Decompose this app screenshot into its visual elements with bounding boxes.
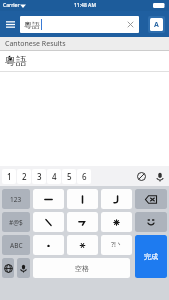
button[interactable]: 1 (2, 169, 16, 184)
button[interactable] (33, 235, 64, 255)
staticText: 完成 (144, 252, 158, 261)
button[interactable]: Menu (0, 14, 20, 34)
staticText: ABC (10, 241, 23, 250)
button[interactable] (67, 212, 98, 232)
staticText: 123 (10, 195, 22, 204)
button[interactable]: 粵語 (0, 51, 169, 71)
staticText: 4 (52, 171, 57, 182)
staticText: 空格 (75, 264, 89, 273)
button[interactable]: Change keyboard language (2, 258, 14, 278)
button[interactable]: 4 (47, 169, 61, 184)
button[interactable]: 2 (17, 169, 31, 184)
button[interactable] (101, 189, 132, 209)
button[interactable]: 完成 (135, 235, 167, 278)
button[interactable] (67, 189, 98, 209)
button[interactable]: 123 (2, 189, 30, 209)
staticText: 11:48 AM (74, 2, 96, 9)
button[interactable]: Backspace (135, 189, 167, 209)
button[interactable]: 粵語 (20, 16, 139, 33)
button[interactable] (101, 212, 132, 232)
staticText: ?!丶 (111, 240, 123, 250)
button[interactable] (67, 235, 98, 255)
staticText: Carrier (3, 2, 20, 9)
staticText: #@$ (9, 218, 23, 227)
button[interactable]: ?!丶 (101, 235, 132, 255)
button[interactable] (33, 212, 64, 232)
button[interactable]: #@$ (2, 212, 30, 232)
button[interactable] (33, 189, 64, 209)
staticText: 粵語 (24, 20, 40, 30)
staticText: 6 (82, 171, 87, 182)
button[interactable]: A (148, 16, 165, 33)
button[interactable]: Voice input (153, 170, 166, 183)
staticText: 粵語 (5, 54, 27, 68)
staticText: 3 (37, 171, 42, 182)
button[interactable]: 5 (62, 169, 76, 184)
button[interactable]: Clear (125, 19, 136, 30)
staticText: A (154, 20, 159, 30)
button[interactable]: Voice input (17, 258, 30, 278)
staticText: 5 (67, 171, 72, 182)
button[interactable]: 6 (77, 169, 91, 184)
staticText: 2 (22, 171, 27, 182)
button[interactable]: 3 (32, 169, 46, 184)
staticText: Cantonese Results (5, 39, 66, 49)
button[interactable]: Emoji (135, 212, 167, 232)
button[interactable]: 空格 (33, 258, 130, 278)
button[interactable]: ABC (2, 235, 30, 255)
staticText: 1 (7, 171, 12, 182)
button[interactable]: Disable autocorrect (135, 170, 148, 183)
